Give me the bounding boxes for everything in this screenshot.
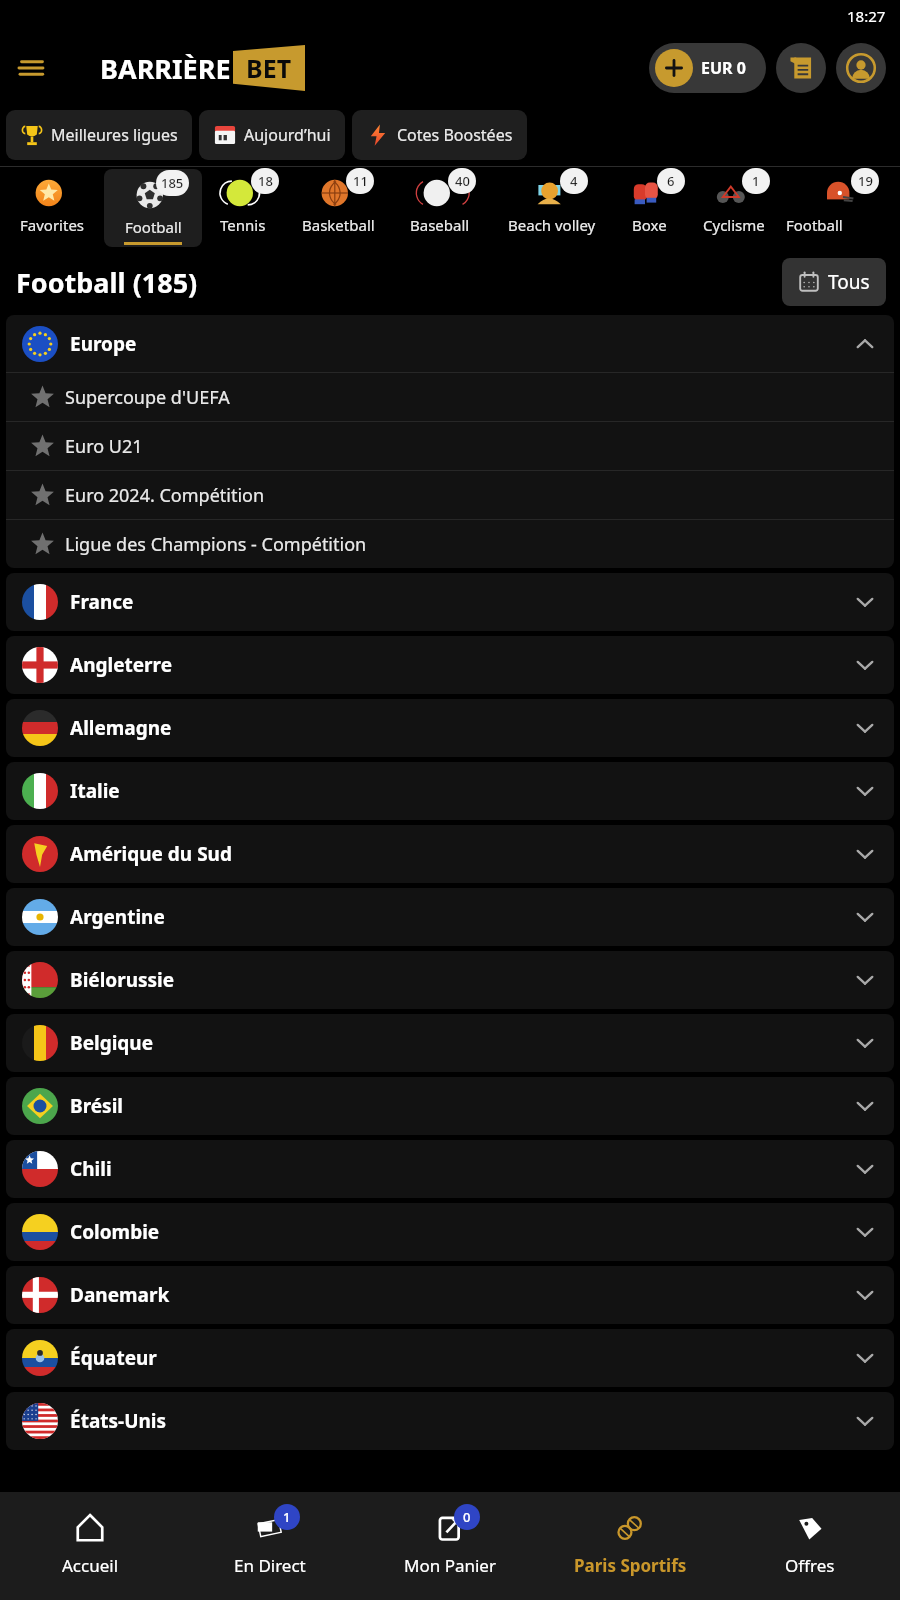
button[interactable]: Meilleures ligues — [6, 110, 192, 160]
staticText: Tous — [828, 269, 870, 295]
staticText: Euro U21 — [65, 434, 143, 459]
button[interactable]: Euro 2024. Compétition — [6, 471, 894, 519]
staticText: Football américai — [786, 215, 900, 235]
button[interactable]: EUR 0 — [649, 43, 766, 93]
staticText: Mon Panier — [404, 1554, 496, 1577]
button[interactable]: 0 — [360, 1492, 540, 1600]
staticText: 0 — [463, 1508, 471, 1526]
button[interactable]: Amérique du Sud — [6, 825, 894, 883]
button[interactable]: 4 — [488, 167, 616, 249]
staticText: Danemark — [70, 1282, 170, 1308]
button[interactable]: Allemagne — [6, 699, 894, 757]
button[interactable]: Ligue des Champions - Compétition — [6, 520, 894, 568]
staticText: Football (185) — [16, 264, 198, 301]
staticText: Angleterre — [70, 652, 173, 678]
button[interactable]: Menu — [10, 46, 54, 90]
staticText: France — [70, 589, 134, 615]
staticText: États-Unis — [70, 1408, 167, 1434]
staticText: Italie — [70, 778, 120, 804]
button[interactable]: Italie — [6, 762, 894, 820]
button[interactable]: Supercoupe d'UEFA — [6, 373, 894, 421]
staticText: Supercoupe d'UEFA — [65, 385, 230, 410]
button[interactable]: 11 — [284, 167, 392, 249]
staticText: Boxe — [632, 215, 667, 235]
button[interactable]: Biélorussie — [6, 951, 894, 1009]
staticText: Offres — [785, 1554, 835, 1577]
button[interactable]: Euro U21 — [6, 422, 894, 470]
staticText: Biélorussie — [70, 967, 175, 993]
staticText: 11 — [353, 172, 368, 190]
staticText: Belgique — [70, 1030, 154, 1056]
staticText: Allemagne — [70, 715, 172, 741]
button[interactable]: France — [6, 573, 894, 631]
staticText: En Direct — [234, 1554, 306, 1577]
button[interactable]: Colombie — [6, 1203, 894, 1261]
button[interactable]: Argentine — [6, 888, 894, 946]
button[interactable]: 1 — [180, 1492, 360, 1600]
staticText: Europe — [70, 331, 137, 357]
staticText: Aujourd’hui — [244, 124, 331, 146]
staticText: Baseball — [410, 215, 470, 235]
button[interactable]: Équateur — [6, 1329, 894, 1387]
button[interactable]: 185 — [104, 169, 202, 247]
button[interactable]: Bet slip — [776, 43, 826, 93]
button[interactable]: Accueil — [0, 1492, 180, 1600]
staticText: BET — [246, 51, 292, 85]
staticText: Brésil — [70, 1093, 123, 1119]
staticText: Ligue des Champions - Compétition — [65, 532, 367, 557]
button[interactable]: Account — [836, 43, 886, 93]
button[interactable]: Brésil — [6, 1077, 894, 1135]
staticText: Amérique du Sud — [70, 841, 232, 867]
button[interactable]: Chili — [6, 1140, 894, 1198]
staticText: Colombie — [70, 1219, 160, 1245]
staticText: Euro 2024. Compétition — [65, 483, 265, 508]
button[interactable]: Cotes Boostées — [352, 110, 527, 160]
staticText: 185 — [161, 174, 184, 192]
button[interactable]: Offres — [720, 1492, 900, 1600]
staticText: Cyclisme — [703, 215, 765, 235]
button[interactable]: Favorites — [0, 167, 104, 249]
button[interactable]: 18 — [202, 167, 284, 249]
button[interactable]: 40 — [392, 167, 488, 249]
staticText: 40 — [455, 172, 470, 190]
button[interactable]: Danemark — [6, 1266, 894, 1324]
staticText: 6 — [667, 172, 675, 190]
button[interactable]: Belgique — [6, 1014, 894, 1072]
staticText: Cotes Boostées — [397, 124, 513, 146]
button[interactable]: 6 — [616, 167, 682, 249]
button[interactable]: Angleterre — [6, 636, 894, 694]
staticText: Football — [125, 217, 182, 237]
staticText: Argentine — [70, 904, 165, 930]
staticText: Équateur — [70, 1345, 157, 1371]
button[interactable]: Tous — [782, 258, 886, 306]
staticText: Beach volley — [508, 215, 596, 235]
staticText: BARRIÈRE — [100, 50, 231, 87]
staticText: EUR 0 — [701, 57, 746, 79]
staticText: Tennis — [220, 215, 266, 235]
button[interactable]: 1 — [682, 167, 786, 249]
button[interactable]: Paris Sportifs — [540, 1492, 720, 1600]
staticText: Basketball — [302, 215, 375, 235]
staticText: 1 — [283, 1508, 291, 1526]
staticText: 4 — [570, 172, 578, 190]
staticText: Meilleures ligues — [51, 124, 178, 146]
staticText: Favorites — [20, 215, 85, 235]
staticText: 19 — [858, 172, 873, 190]
staticText: Paris Sportifs — [574, 1554, 687, 1577]
staticText: 18:27 — [847, 6, 886, 26]
button[interactable]: Aujourd’hui — [199, 110, 345, 160]
button[interactable]: États-Unis — [6, 1392, 894, 1450]
button[interactable]: Europe — [6, 315, 894, 372]
staticText: Chili — [70, 1156, 112, 1182]
button[interactable]: 19 — [786, 167, 900, 249]
staticText: 1 — [752, 172, 760, 190]
staticText: Accueil — [62, 1554, 119, 1577]
staticText: 18 — [258, 172, 273, 190]
